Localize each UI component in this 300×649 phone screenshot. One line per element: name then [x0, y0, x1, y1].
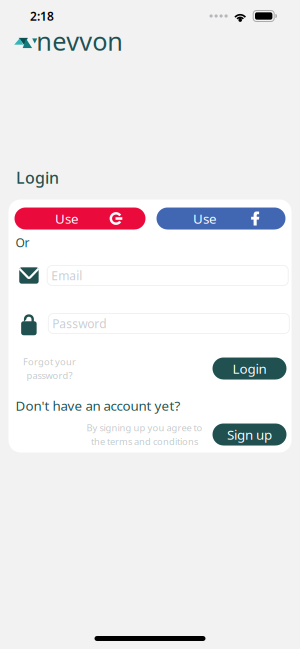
staticText: Login: [16, 167, 59, 188]
staticText: the terms and conditions: [91, 435, 198, 448]
button[interactable]: Use: [14, 207, 145, 229]
staticText: Or: [15, 234, 29, 250]
staticText: password?: [26, 369, 72, 382]
staticText: Use: [55, 210, 79, 227]
staticText: 2:18: [30, 8, 54, 24]
staticText: Login: [232, 360, 266, 377]
staticText: Forgot your: [23, 355, 76, 368]
staticText: Password: [52, 315, 106, 331]
staticText: Use: [193, 210, 217, 227]
staticText: Sign up: [227, 426, 272, 443]
button[interactable]: Forgot your: [17, 357, 81, 379]
button[interactable]: Login: [212, 357, 286, 379]
staticText: Don't have an account yet?: [15, 397, 180, 414]
staticText: Email: [51, 267, 82, 283]
staticText: By signing up you agree to: [86, 421, 202, 434]
button[interactable]: Use: [156, 207, 285, 229]
staticText: nevvon: [36, 24, 123, 58]
button[interactable]: Sign up: [212, 423, 286, 445]
